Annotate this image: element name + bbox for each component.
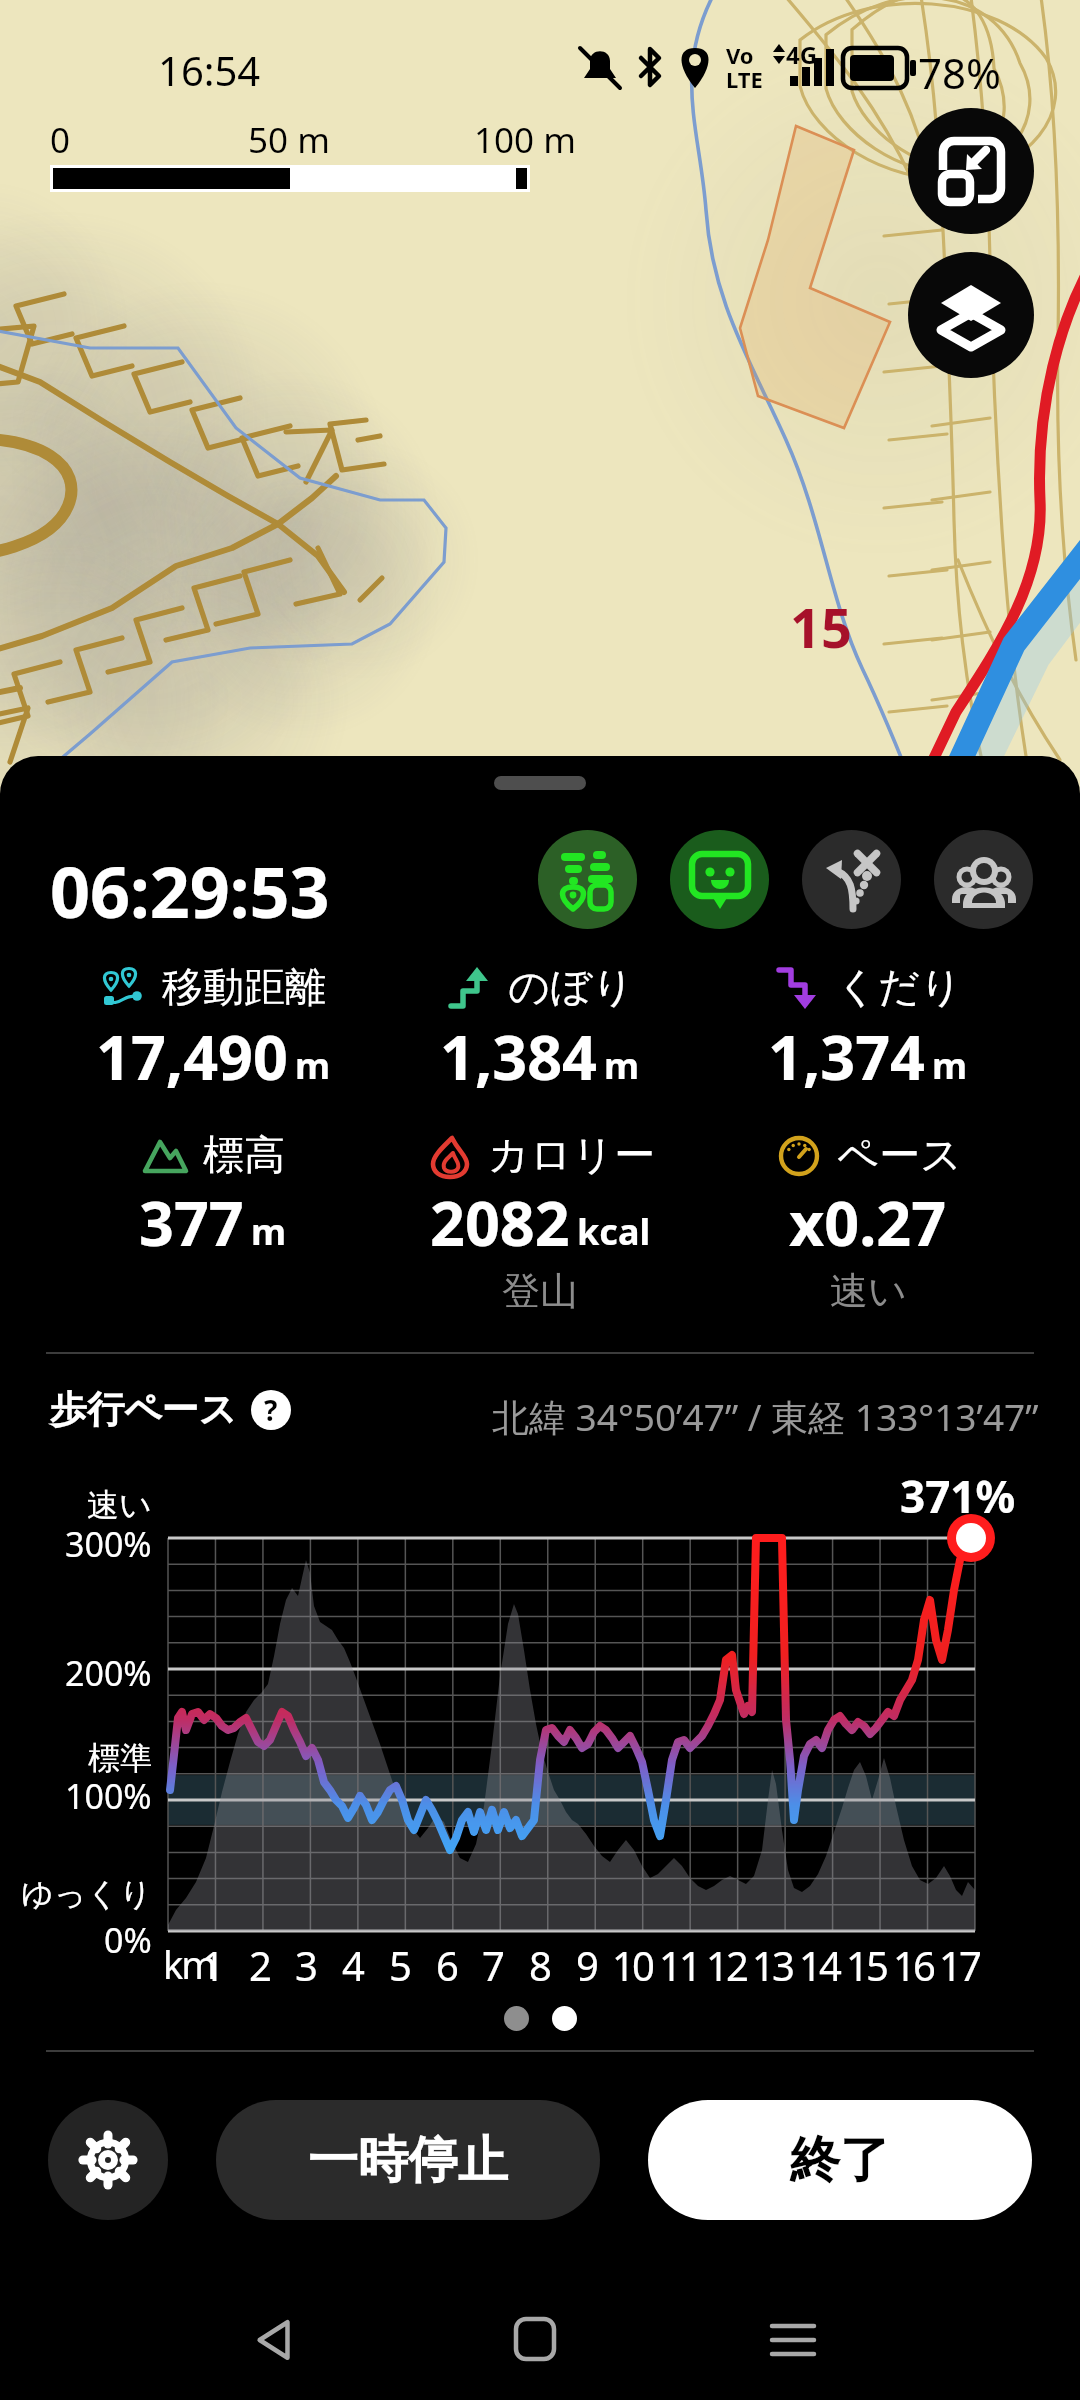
staticText: 15 bbox=[790, 590, 852, 664]
staticText: 0 bbox=[50, 116, 71, 164]
button[interactable]: Back bbox=[215, 2280, 335, 2400]
staticText: 1,384 bbox=[440, 1015, 597, 1098]
staticText: 16:54 bbox=[158, 43, 261, 97]
staticText: 1 bbox=[202, 1938, 222, 1992]
staticText: 371% bbox=[900, 1466, 1016, 1526]
staticText: m bbox=[604, 1041, 640, 1090]
staticText: のぼり bbox=[508, 962, 634, 1014]
staticText: 速い bbox=[87, 1485, 152, 1525]
staticText: 4 bbox=[342, 1938, 362, 1992]
staticText: x0.27 bbox=[789, 1181, 947, 1264]
staticText: 50 m bbox=[248, 116, 330, 164]
staticText: 9 bbox=[576, 1938, 596, 1992]
staticText: 10 bbox=[612, 1938, 652, 1992]
staticText: ペース bbox=[837, 1130, 962, 1182]
staticText: 13 bbox=[752, 1938, 792, 1992]
staticText: 移動距離 bbox=[162, 962, 326, 1014]
staticText: 17 bbox=[939, 1938, 979, 1992]
staticText: 7 bbox=[482, 1938, 502, 1992]
staticText: 北緯 34°50’47” / 東経 133°13’47” bbox=[492, 1391, 1039, 1442]
staticText: 200% bbox=[65, 1650, 152, 1696]
staticText: 14 bbox=[799, 1938, 839, 1992]
staticText: 300% bbox=[65, 1521, 152, 1567]
button[interactable]: Home bbox=[475, 2280, 595, 2400]
staticText: 歩行ペース bbox=[50, 1386, 237, 1433]
staticText: 3 bbox=[295, 1938, 315, 1992]
staticText: 377 bbox=[139, 1181, 244, 1264]
staticText: 4G bbox=[786, 38, 818, 71]
button[interactable]: Map layers bbox=[908, 252, 1034, 378]
staticText: kcal bbox=[577, 1207, 651, 1256]
staticText: 速い bbox=[830, 1267, 907, 1315]
staticText: 78% bbox=[918, 44, 1001, 101]
staticText: m bbox=[251, 1207, 287, 1256]
staticText: カロリー bbox=[488, 1130, 655, 1182]
staticText: 06:29:53 bbox=[50, 843, 330, 938]
staticText: 5 bbox=[389, 1938, 409, 1992]
button[interactable]: 一時停止 bbox=[216, 2100, 600, 2220]
staticText: 100% bbox=[65, 1773, 152, 1819]
staticText: 2 bbox=[249, 1938, 269, 1992]
staticText: 100 m bbox=[474, 116, 576, 164]
staticText: 11 bbox=[659, 1938, 699, 1992]
staticText: 16 bbox=[893, 1938, 933, 1992]
staticText: 17,490 bbox=[96, 1015, 288, 1098]
button[interactable]: Recent apps bbox=[733, 2280, 853, 2400]
staticText: Vo LTE bbox=[726, 40, 763, 94]
button[interactable]: Members bbox=[934, 830, 1033, 929]
staticText: 0% bbox=[104, 1917, 152, 1963]
staticText: m bbox=[932, 1041, 968, 1090]
staticText: 12 bbox=[706, 1938, 746, 1992]
button[interactable]: Chat bbox=[670, 830, 769, 929]
button[interactable]: Full screen bbox=[908, 108, 1034, 234]
button[interactable]: Help bbox=[251, 1390, 291, 1430]
button[interactable]: Settings bbox=[48, 2100, 168, 2220]
staticText: km bbox=[163, 1938, 215, 1990]
staticText: 終了 bbox=[790, 2129, 890, 2192]
staticText: m bbox=[295, 1041, 331, 1090]
staticText: 8 bbox=[529, 1938, 549, 1992]
button[interactable]: Photos and water bbox=[538, 830, 637, 929]
staticText: 標準 bbox=[88, 1738, 152, 1778]
staticText: ? bbox=[264, 1391, 278, 1429]
staticText: 一時停止 bbox=[308, 2129, 508, 2192]
staticText: 6 bbox=[436, 1938, 456, 1992]
staticText: 標高 bbox=[203, 1130, 285, 1182]
staticText: 1,374 bbox=[768, 1015, 925, 1098]
staticText: くだり bbox=[836, 962, 962, 1014]
staticText: 登山 bbox=[502, 1267, 578, 1315]
button[interactable]: Route finder bbox=[802, 830, 901, 929]
staticText: ゆっくり bbox=[21, 1874, 152, 1914]
staticText: 15 bbox=[846, 1938, 886, 1992]
button[interactable]: 終了 bbox=[648, 2100, 1032, 2220]
staticText: 2082 bbox=[430, 1181, 570, 1264]
